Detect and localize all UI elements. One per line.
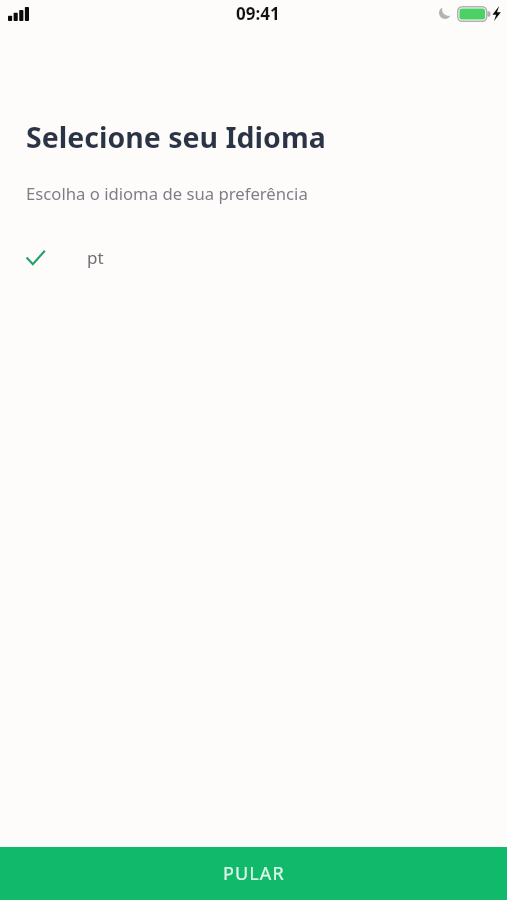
other: Charging <box>492 6 501 21</box>
staticText: 09:41 <box>236 2 280 25</box>
other: Battery full <box>457 6 491 22</box>
other: Do not disturb <box>439 7 451 19</box>
button[interactable]: pt <box>0 229 507 285</box>
staticText: Escolha o idioma de sua preferência <box>26 182 308 205</box>
staticText: PULAR <box>223 861 285 886</box>
other: Signal strength <box>8 7 29 21</box>
staticText: pt <box>87 246 104 269</box>
staticText: Selecione seu Idioma <box>26 118 326 157</box>
button[interactable]: PULAR <box>0 847 507 900</box>
